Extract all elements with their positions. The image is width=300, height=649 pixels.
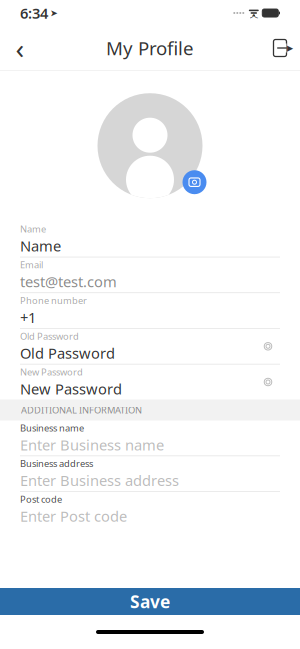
button[interactable]: Back xyxy=(0,26,40,70)
staticText: Enter Business address xyxy=(20,471,179,490)
staticText: Email xyxy=(20,258,43,271)
staticText: Business address xyxy=(20,457,93,470)
staticText: Name xyxy=(20,236,61,256)
staticText: 6:34 xyxy=(20,3,48,23)
staticText: My Profile xyxy=(106,36,194,60)
staticText: New Password xyxy=(20,366,83,378)
button[interactable]: Change profile photo xyxy=(93,92,206,200)
button[interactable]: Save xyxy=(0,588,300,615)
staticText: ‹ xyxy=(15,29,24,67)
staticText: test@test.com xyxy=(20,272,117,291)
button[interactable]: Log out xyxy=(260,26,300,70)
staticText: Business name xyxy=(20,422,84,434)
staticText: Enter Business name xyxy=(20,435,164,454)
staticText: Enter Post code xyxy=(20,506,127,526)
staticText: Name xyxy=(20,223,46,235)
staticText: Phone number xyxy=(20,294,87,307)
button[interactable]: Show New Password xyxy=(256,372,280,392)
staticText: Old Password xyxy=(20,330,79,342)
staticText: Post code xyxy=(20,493,62,505)
staticText: ▶ xyxy=(287,43,293,53)
staticText: Save xyxy=(130,590,170,613)
staticText: +1 xyxy=(20,308,36,327)
staticText: ➤ xyxy=(50,8,58,18)
button[interactable]: Show Old Password xyxy=(256,336,280,356)
staticText: ◞◟ xyxy=(250,7,258,19)
staticText: New Password xyxy=(20,379,122,398)
staticText: Old Password xyxy=(20,343,115,363)
staticText: ADDITIONAL INFORMATION xyxy=(21,404,142,416)
